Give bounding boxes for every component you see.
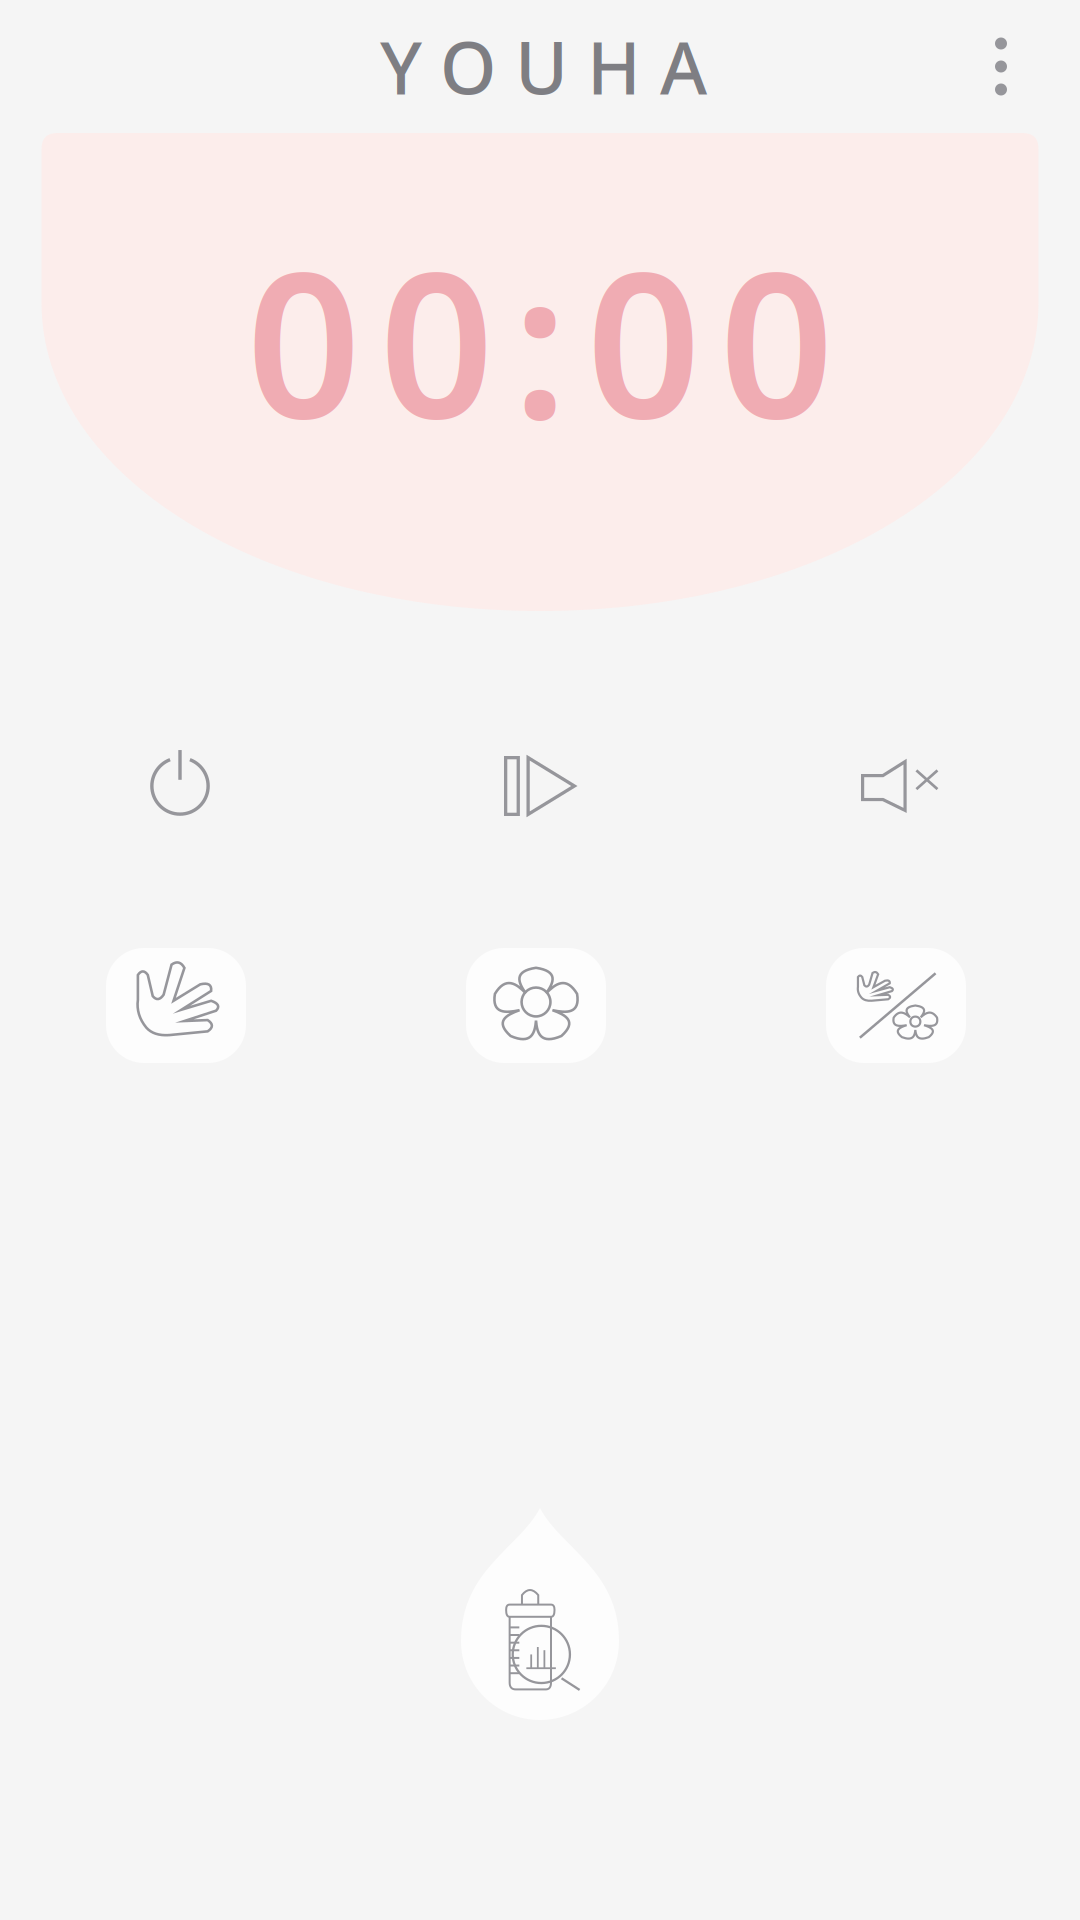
button[interactable]: Power — [100, 726, 260, 846]
button[interactable]: Mute — [820, 726, 980, 846]
button[interactable]: Start — [460, 726, 620, 846]
button[interactable]: Milk analysis — [440, 1499, 640, 1729]
staticText: YOUHA — [380, 19, 707, 114]
button[interactable]: Massage mode — [106, 948, 246, 1063]
button[interactable]: More options — [946, 10, 1080, 122]
button[interactable]: Mixed mode — [826, 948, 966, 1063]
staticText: 00:00 — [246, 208, 833, 473]
button[interactable]: Expression mode — [466, 948, 606, 1063]
